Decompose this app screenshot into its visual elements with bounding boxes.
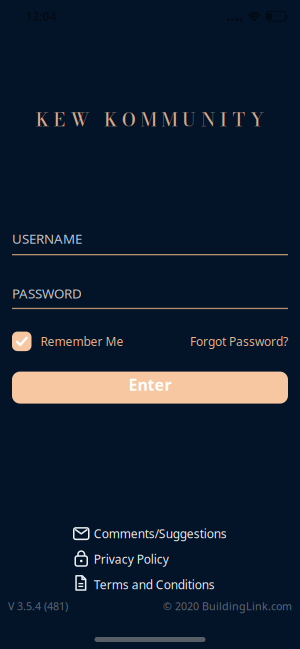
button[interactable]: Terms and Conditions — [73, 576, 215, 593]
staticText: Privacy Policy — [94, 551, 169, 567]
button[interactable]: Privacy Policy — [73, 551, 169, 568]
staticText: Forgot Password? — [190, 333, 288, 349]
staticText: KEW KOMMUNITY — [36, 105, 264, 134]
staticText: © 2020 BuildingLink.com — [163, 599, 292, 613]
button[interactable]: Remember Me — [12, 332, 123, 351]
staticText: V 3.5.4 (481) — [8, 599, 68, 613]
staticText: Terms and Conditions — [94, 577, 215, 592]
staticText: Enter — [128, 374, 171, 395]
staticText: PASSWORD — [12, 284, 82, 302]
button[interactable]: USERNAME — [12, 230, 288, 255]
button[interactable]: PASSWORD — [12, 285, 288, 309]
button[interactable]: Comments/Suggestions — [73, 525, 227, 542]
staticText: 12:04 — [25, 8, 56, 24]
staticText: USERNAME — [12, 230, 82, 247]
staticText: Remember Me — [40, 333, 123, 349]
button[interactable]: Enter — [12, 372, 288, 404]
staticText: Comments/Suggestions — [94, 526, 227, 541]
button[interactable]: Forgot Password? — [190, 333, 288, 349]
